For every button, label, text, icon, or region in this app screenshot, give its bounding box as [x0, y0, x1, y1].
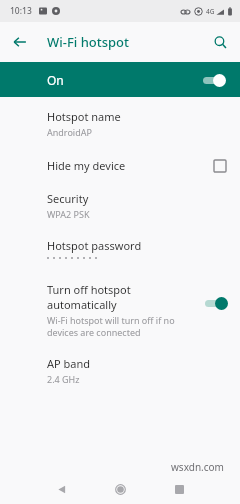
staticText: Wi-Fi hotspot will turn off if no	[47, 314, 175, 326]
staticText: WPA2 PSK	[47, 208, 90, 220]
staticText: wsxdn.com	[171, 460, 224, 474]
button[interactable]: AP band	[0, 352, 240, 389]
staticText: Security	[47, 191, 89, 206]
staticText: automatically	[47, 297, 117, 312]
staticText: Wi-Fi hotspot	[47, 33, 130, 51]
staticText: Hotspot password	[47, 238, 142, 253]
button[interactable]: Search	[206, 28, 234, 56]
staticText: AP band	[47, 356, 91, 371]
staticText: On	[47, 72, 64, 88]
staticText: Hide my device	[47, 158, 126, 173]
button[interactable]: Hotspot name	[0, 105, 240, 142]
button[interactable]: Security	[0, 187, 240, 224]
button[interactable]: Back	[50, 478, 72, 500]
button[interactable]: Back	[6, 28, 34, 56]
staticText: 10:13	[10, 5, 32, 17]
staticText: devices are connected	[47, 326, 141, 338]
staticText: Turn off hotspot	[47, 282, 131, 297]
staticText: AndroidAP	[47, 126, 92, 138]
button[interactable]: Turn off hotspot	[0, 278, 240, 342]
staticText: Hotspot name	[47, 109, 121, 124]
button[interactable]: Hotspot password	[0, 234, 240, 266]
staticText: 2.4 GHz	[47, 373, 80, 385]
button[interactable]: Hide my device	[0, 152, 240, 179]
button[interactable]: Home	[109, 478, 131, 500]
staticText: 4G	[206, 7, 215, 16]
button[interactable]: On	[0, 62, 240, 97]
button[interactable]: Recents	[168, 478, 190, 500]
